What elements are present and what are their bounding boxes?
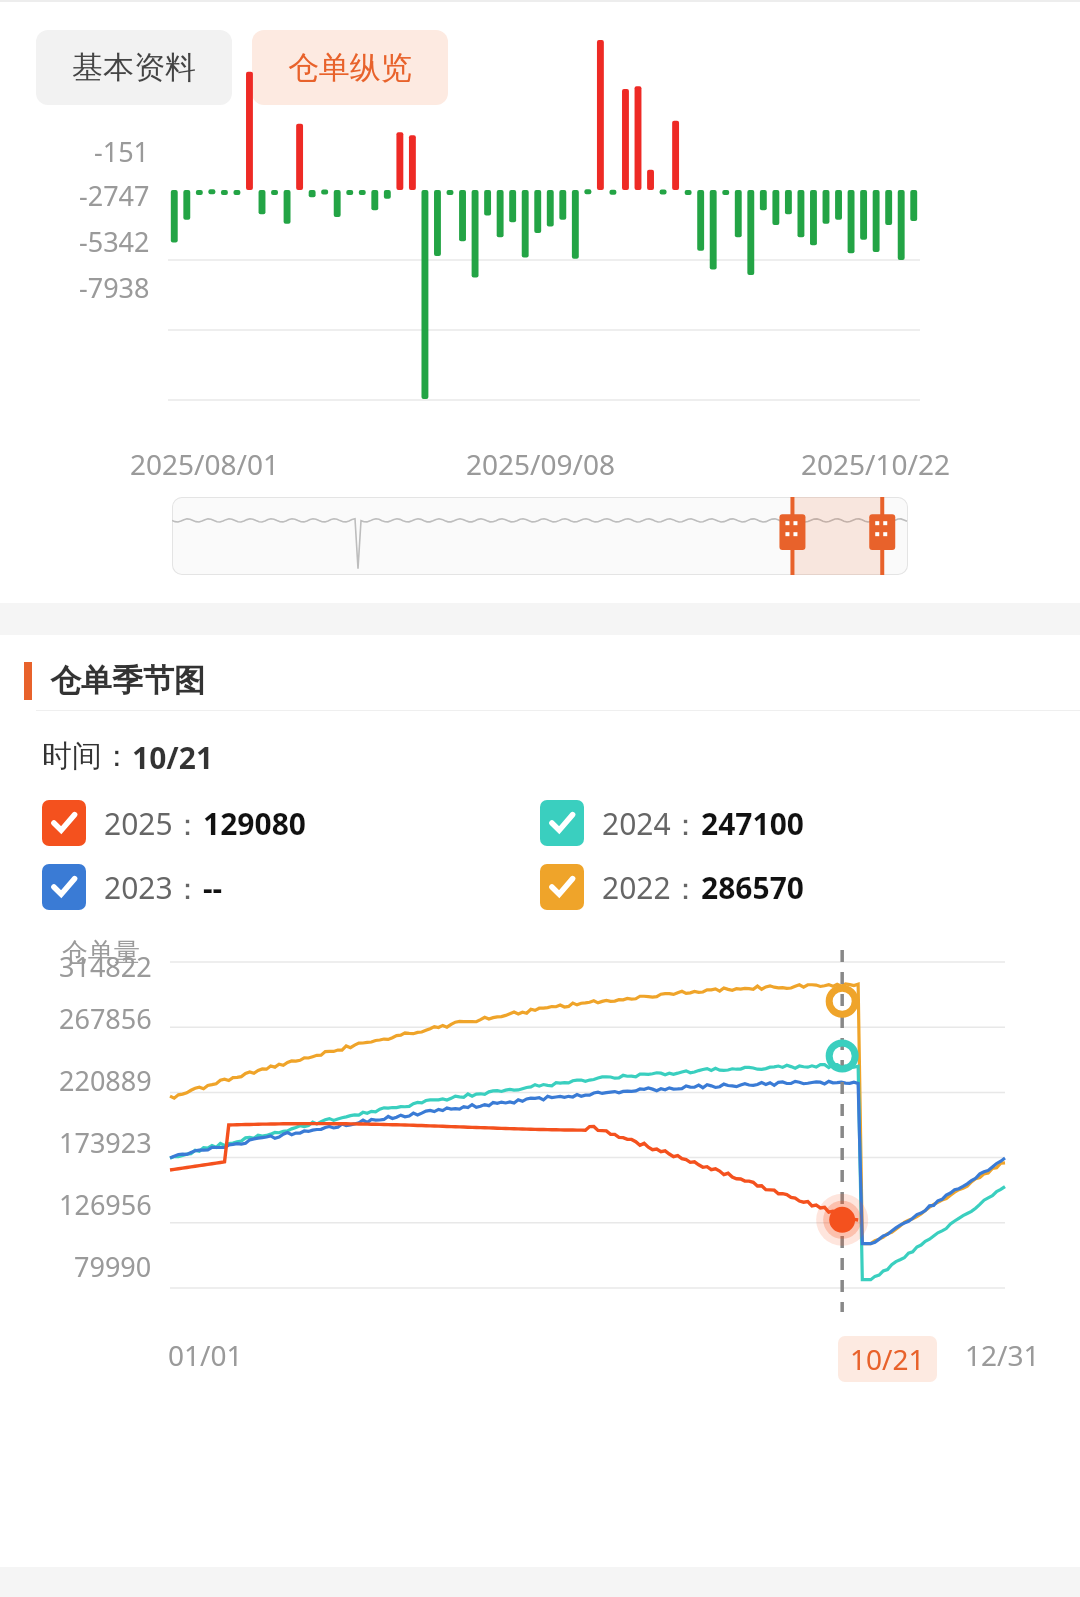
staticText: 79990 xyxy=(74,1248,152,1285)
button[interactable]: 2024： xyxy=(540,800,804,846)
staticText: 仓单纵览 xyxy=(288,48,412,87)
staticText: -- xyxy=(203,867,223,908)
staticText: 2025： xyxy=(104,803,203,844)
button[interactable]: 2023： xyxy=(42,864,223,910)
staticText: 267856 xyxy=(59,1000,152,1037)
staticText: 126956 xyxy=(59,1186,152,1223)
staticText: 仓单季节图 xyxy=(50,661,205,700)
staticText: 10/21 xyxy=(132,737,214,778)
staticText: 2024： xyxy=(602,803,701,844)
staticText: 286570 xyxy=(701,867,804,908)
staticText: 10/21 xyxy=(850,1340,925,1378)
staticText: 01/01 xyxy=(168,1336,243,1374)
staticText: -2747 xyxy=(79,177,150,214)
button[interactable]: 基本资料 xyxy=(36,30,232,105)
staticText: 2025/09/08 xyxy=(466,445,615,483)
staticText: -7938 xyxy=(79,269,150,306)
button[interactable]: Range selector xyxy=(172,497,908,575)
staticText: 2022： xyxy=(602,867,701,908)
staticText: -151 xyxy=(94,133,150,170)
staticText: 基本资料 xyxy=(72,48,196,87)
staticText: -5342 xyxy=(79,223,150,260)
staticText: 仓单量 xyxy=(62,936,140,969)
staticText: 2023： xyxy=(104,867,203,908)
staticText: 314822 xyxy=(59,948,152,985)
button[interactable]: 2025： xyxy=(42,800,306,846)
button[interactable]: 2022： xyxy=(540,864,804,910)
staticText: 129080 xyxy=(203,803,306,844)
staticText: 173923 xyxy=(59,1124,152,1161)
staticText: 247100 xyxy=(701,803,804,844)
staticText: 220889 xyxy=(59,1062,152,1099)
staticText: 2025/08/01 xyxy=(130,445,279,483)
staticText: 2025/10/22 xyxy=(801,445,950,483)
staticText: 12/31 xyxy=(965,1336,1040,1374)
button[interactable]: 仓单纵览 xyxy=(252,30,448,105)
staticText: 时间： xyxy=(42,737,132,775)
button[interactable]: 10/21 xyxy=(838,1336,937,1382)
